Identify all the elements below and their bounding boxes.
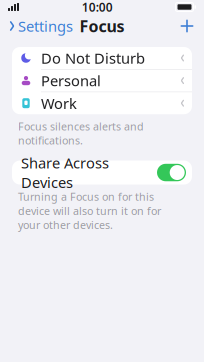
staticText: Focus silences alerts and notifications. <box>18 119 144 147</box>
button[interactable]: Work <box>12 92 192 114</box>
staticText: Do Not Disturb <box>41 48 145 68</box>
staticText: Personal <box>41 71 101 90</box>
staticText: Turning a Focus on for this device will … <box>18 189 161 232</box>
button[interactable]: Settings <box>3 11 79 41</box>
button[interactable]: Personal <box>12 70 192 92</box>
button[interactable]: Do Not Disturb <box>12 47 192 69</box>
button[interactable]: Share Across Devices <box>12 160 192 184</box>
staticText: Focus <box>79 15 124 37</box>
staticText: 10:00 <box>82 0 113 15</box>
staticText: Share Across Devices <box>21 153 109 192</box>
staticText: Work <box>41 93 77 113</box>
button[interactable]: Add Focus <box>173 14 201 38</box>
staticText: Settings <box>18 16 73 36</box>
